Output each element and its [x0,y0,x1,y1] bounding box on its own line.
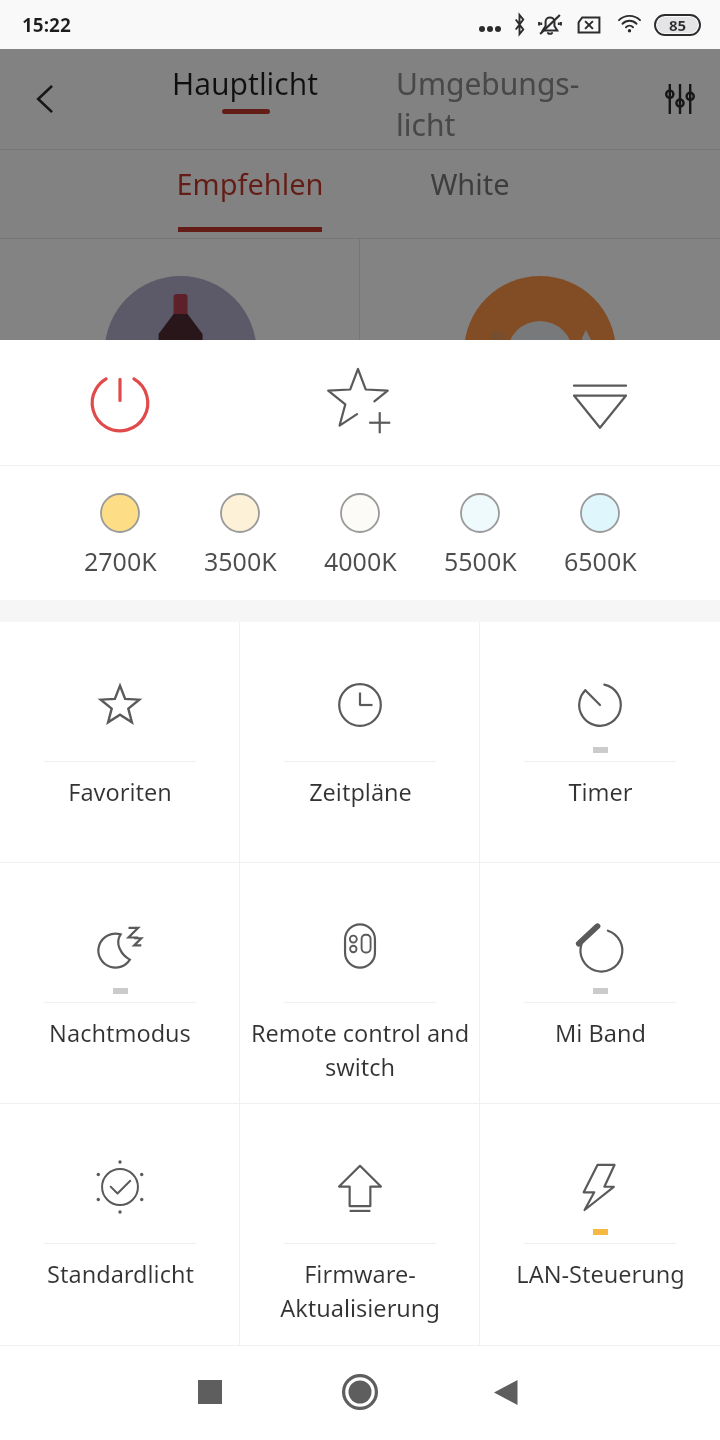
staticText: Zeitpläne [309,776,412,808]
staticText: Nachtmodus [49,1017,191,1049]
button[interactable]: Standardlicht [0,1104,240,1345]
button[interactable]: Home [300,1346,420,1440]
button[interactable]: Back [0,49,90,149]
staticText: 15:22 [22,12,71,38]
button[interactable]: Add favourite [240,340,480,465]
staticText: Firmware-Aktualisierung [244,1258,476,1324]
staticText: 6500K [564,544,637,578]
button[interactable]: Timer [480,622,720,862]
button[interactable]: Hauptlicht [172,63,319,114]
button[interactable]: Favoriten [0,622,240,862]
staticText: 85 [669,15,687,35]
button[interactable]: 2700K [60,466,180,600]
staticText: Standardlicht [47,1258,194,1290]
staticText: LAN-Steuerung [516,1258,685,1290]
button[interactable]: White [370,150,570,238]
button[interactable]: Firmware-Aktualisierung [240,1104,480,1345]
staticText: Favoriten [68,776,172,808]
staticText: Empfehlen [176,164,324,203]
button[interactable]: Empfehlen [150,150,350,238]
staticText: White [430,164,510,203]
button[interactable]: 4000K [300,466,420,600]
button[interactable]: 5500K [420,466,540,600]
staticText: licht [396,104,456,145]
button[interactable]: Collapse [480,340,720,465]
button[interactable]: Settings [640,49,720,149]
staticText: 2700K [84,544,157,578]
button[interactable]: LAN-Steuerung [480,1104,720,1345]
staticText: Umgebungs- [396,63,580,104]
staticText: 3500K [204,544,277,578]
button[interactable]: Umgebungs- [396,63,596,145]
button[interactable]: 3500K [180,466,300,600]
button[interactable]: Remote control and switch [240,863,480,1103]
button[interactable]: Recents [150,1346,270,1440]
staticText: Timer [568,776,633,808]
staticText: 4000K [324,544,397,578]
staticText: Remote control and switch [244,1017,476,1083]
button[interactable]: Power [0,340,240,465]
button[interactable]: 6500K [540,466,660,600]
button[interactable]: Nachtmodus [0,863,240,1103]
staticText: Hauptlicht [172,63,319,104]
button[interactable]: Back [446,1346,566,1440]
staticText: 5500K [444,544,517,578]
staticText: Mi Band [555,1017,646,1049]
button[interactable]: Zeitpläne [240,622,480,862]
button[interactable]: Mi Band [480,863,720,1103]
